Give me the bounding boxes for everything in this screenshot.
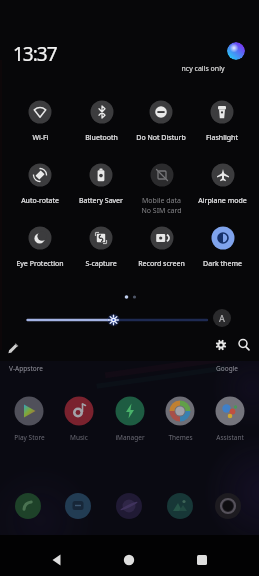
button[interactable] xyxy=(37,545,77,575)
button[interactable]: Record screen xyxy=(130,225,192,271)
button[interactable] xyxy=(14,492,42,520)
button[interactable] xyxy=(214,492,242,520)
staticText: Assistant xyxy=(216,433,244,442)
staticText: Google xyxy=(216,364,238,373)
button[interactable] xyxy=(182,545,222,575)
button[interactable] xyxy=(4,337,24,357)
button[interactable] xyxy=(20,310,216,330)
staticText: Dark theme xyxy=(203,259,242,269)
button[interactable] xyxy=(227,42,245,60)
staticText: Wi-Fi xyxy=(32,133,49,143)
staticText: V-Appstore xyxy=(9,364,43,373)
button[interactable] xyxy=(64,396,94,426)
button[interactable]: Battery Saver xyxy=(70,162,132,208)
button[interactable]: Dark theme xyxy=(191,225,253,271)
staticText: Bluetooth xyxy=(85,133,118,143)
button[interactable]: S-capture xyxy=(70,225,132,271)
staticText: Play Store xyxy=(14,433,45,442)
staticText: Battery Saver xyxy=(79,196,123,206)
staticText: Airplane mode xyxy=(198,196,247,206)
button[interactable] xyxy=(115,396,145,426)
staticText: Mobile data xyxy=(142,196,181,206)
staticText: No SIM card xyxy=(141,206,182,216)
staticText: Record screen xyxy=(138,259,185,269)
staticText: S-capture xyxy=(85,259,117,269)
button[interactable] xyxy=(211,335,231,355)
staticText: Auto-rotate xyxy=(21,196,59,206)
button[interactable] xyxy=(64,492,92,520)
button[interactable]: Flashlight xyxy=(191,99,253,145)
button[interactable]: Auto-rotate xyxy=(9,162,71,208)
button[interactable]: Bluetooth xyxy=(70,99,132,145)
button[interactable] xyxy=(234,335,254,355)
button[interactable]: Eye Protection xyxy=(9,225,71,271)
button[interactable]: Wi-Fi xyxy=(9,99,71,145)
staticText: ncy calls only xyxy=(181,64,225,74)
staticText: Music xyxy=(70,433,88,442)
staticText: 13:37 xyxy=(13,41,57,67)
staticText: Themes xyxy=(168,433,193,442)
button[interactable] xyxy=(115,492,143,520)
button[interactable] xyxy=(14,396,44,426)
button[interactable] xyxy=(166,492,194,520)
button[interactable]: Mobile data xyxy=(130,162,192,220)
staticText: Eye Protection xyxy=(16,259,64,269)
button[interactable]: Do Not Disturb xyxy=(130,99,192,145)
button[interactable]: Airplane mode xyxy=(191,162,253,208)
staticText: Flashlight xyxy=(206,133,238,143)
staticText: iManager xyxy=(115,433,145,442)
button[interactable] xyxy=(215,396,245,426)
staticText: Do Not Disturb xyxy=(136,133,186,143)
staticText: A xyxy=(219,312,225,324)
button[interactable] xyxy=(109,545,149,575)
button[interactable] xyxy=(165,396,195,426)
button[interactable]: A xyxy=(213,309,231,327)
